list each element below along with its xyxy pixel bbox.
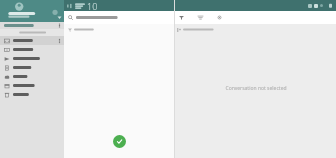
button[interactable]: Archive (0, 81, 64, 90)
other: Search (68, 15, 73, 20)
button[interactable]: Settings (214, 12, 225, 23)
button[interactable]: Sort (195, 12, 206, 23)
button[interactable] (0, 22, 64, 29)
button[interactable]: Compose (113, 135, 126, 148)
button[interactable]: Send (0, 54, 64, 63)
staticText: Conversation not selected (225, 85, 287, 92)
button[interactable]: Filter (176, 12, 187, 23)
button[interactable]: Doc (0, 63, 64, 72)
staticText: 10 (87, 0, 98, 11)
button[interactable]: Inbox (0, 36, 64, 45)
button[interactable]: Cloud (0, 72, 64, 81)
button[interactable] (0, 0, 64, 22)
button[interactable]: Trash (0, 90, 64, 99)
button[interactable]: Star (0, 45, 64, 54)
